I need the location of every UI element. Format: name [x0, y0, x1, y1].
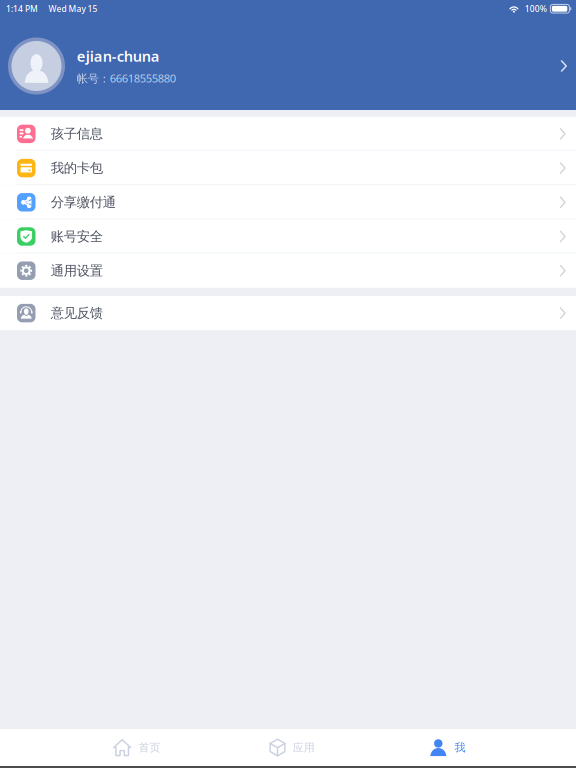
- button[interactable]: 我的卡包: [0, 151, 576, 185]
- button[interactable]: 孩子信息: [0, 117, 576, 151]
- staticText: 1:14 PM: [6, 3, 38, 14]
- staticText: 通用设置: [51, 262, 103, 279]
- staticText: 意见反馈: [51, 305, 103, 321]
- staticText: 100%: [525, 3, 547, 14]
- button[interactable]: 意见反馈: [0, 296, 576, 330]
- button[interactable]: 首页: [59, 729, 214, 766]
- staticText: Wed May 15: [48, 3, 97, 14]
- button[interactable]: 分享缴付通: [0, 185, 576, 219]
- staticText: 我的卡包: [51, 160, 103, 176]
- staticText: ejian-chuna: [77, 46, 160, 66]
- button[interactable]: 账号安全: [0, 219, 576, 254]
- staticText: 分享缴付通: [51, 194, 116, 211]
- button[interactable]: 我: [370, 729, 525, 766]
- staticText: 孩子信息: [51, 125, 103, 142]
- staticText: 账号安全: [51, 228, 103, 245]
- button[interactable]: ejian-chuna: [0, 22, 576, 110]
- staticText: 帐号：66618555880: [77, 71, 176, 86]
- button[interactable]: 应用: [214, 729, 370, 766]
- button[interactable]: 通用设置: [0, 254, 576, 288]
- staticText: 我: [455, 741, 466, 754]
- staticText: 首页: [138, 741, 160, 754]
- staticText: 应用: [293, 741, 315, 754]
